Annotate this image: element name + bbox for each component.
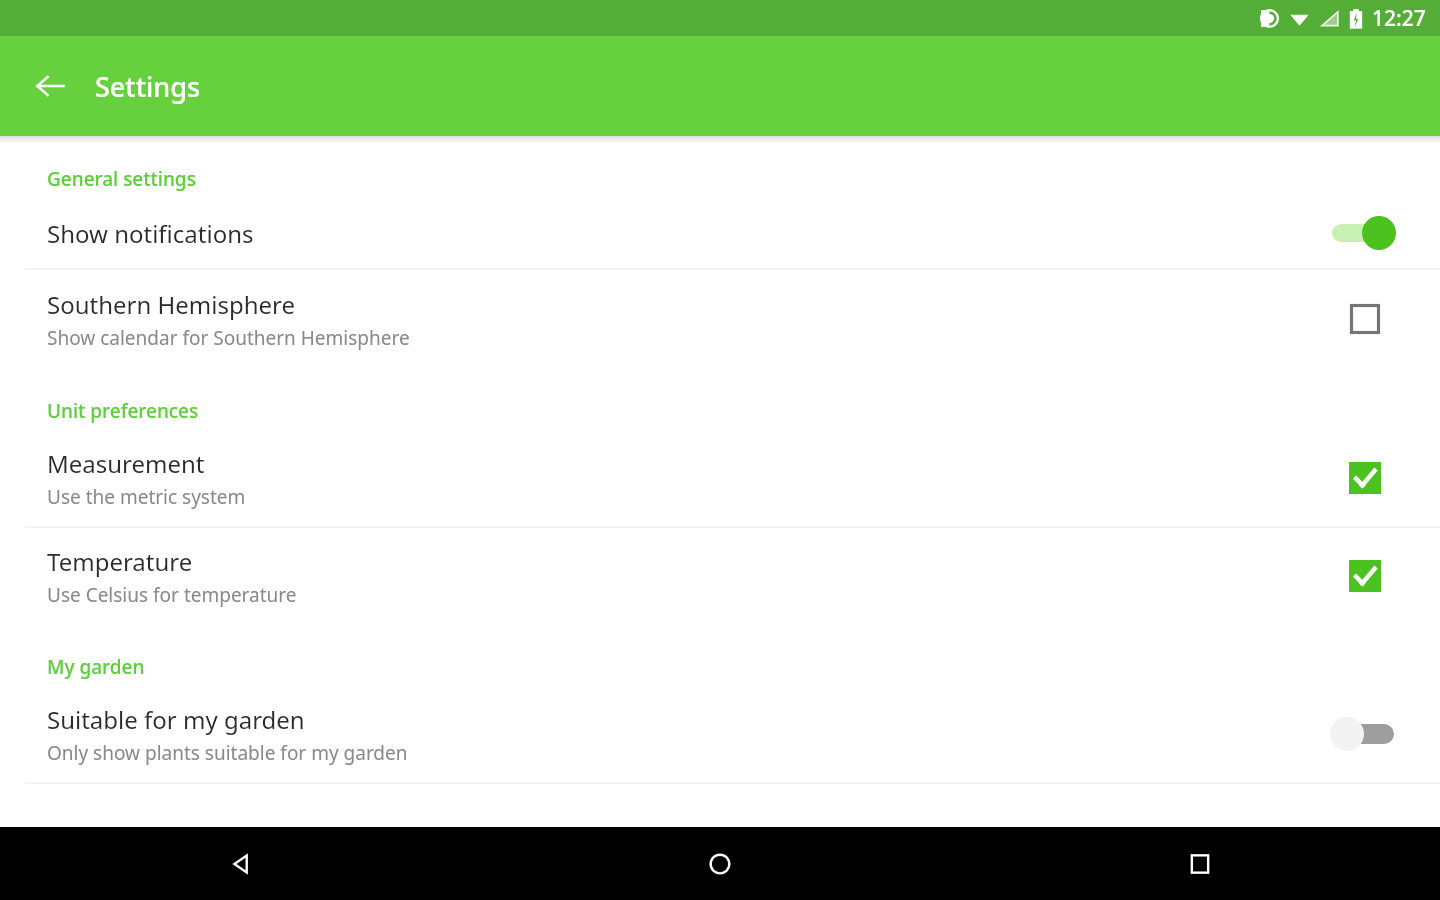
button[interactable]: Back (0, 827, 480, 900)
button[interactable]: Home (480, 827, 960, 900)
button[interactable]: Southern Hemisphere checkbox, unchecked (1339, 293, 1391, 345)
staticText: 12:27 (1372, 4, 1426, 33)
button[interactable]: Recent apps (960, 827, 1440, 900)
staticText: Measurement (47, 447, 205, 480)
button[interactable]: Temperature (0, 528, 1440, 624)
staticText: My garden (47, 654, 145, 680)
staticText: Settings (95, 68, 201, 105)
staticText: Suitable for my garden (47, 703, 305, 736)
staticText: General settings (47, 166, 196, 192)
button[interactable]: Show notifications toggle, on (1326, 211, 1404, 255)
button[interactable]: Checkbox, checked (1339, 550, 1391, 602)
staticText: Southern Hemisphere (47, 288, 296, 321)
staticText: Use the metric system (47, 484, 246, 510)
staticText: Temperature (47, 545, 193, 578)
button[interactable]: Checkbox, checked (1339, 452, 1391, 504)
button[interactable]: Measurement (0, 430, 1440, 526)
button[interactable]: Back (24, 60, 76, 112)
staticText: Unit preferences (47, 398, 199, 424)
staticText: Only show plants suitable for my garden (47, 740, 408, 766)
staticText: Use Celsius for temperature (47, 582, 297, 608)
button[interactable]: Suitable for my garden toggle, off (1326, 712, 1404, 756)
staticText: Show calendar for Southern Hemisphere (47, 325, 410, 351)
button[interactable]: Southern Hemisphere (0, 270, 1440, 368)
button[interactable]: Suitable for my garden (0, 686, 1440, 782)
button[interactable]: Show notifications (0, 198, 1440, 268)
staticText: Show notifications (47, 217, 254, 250)
